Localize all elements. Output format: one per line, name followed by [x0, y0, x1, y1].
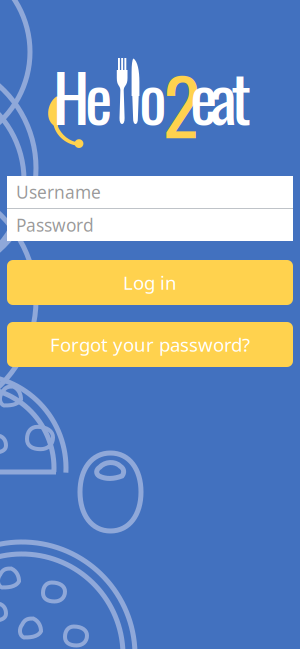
staticText: Password [16, 213, 94, 236]
button[interactable]: Forgot your password? [7, 322, 293, 367]
staticText: 2 [163, 46, 200, 161]
button[interactable]: Log in [7, 260, 293, 305]
staticText: Forgot your password? [50, 332, 250, 357]
staticText: t [231, 47, 251, 144]
staticText: e [190, 47, 218, 144]
staticText: H [53, 47, 90, 144]
staticText: e [85, 47, 113, 144]
staticText: Username [16, 180, 101, 203]
staticText: o [139, 47, 167, 144]
staticText: Log in [123, 270, 177, 295]
staticText: a [210, 47, 237, 144]
